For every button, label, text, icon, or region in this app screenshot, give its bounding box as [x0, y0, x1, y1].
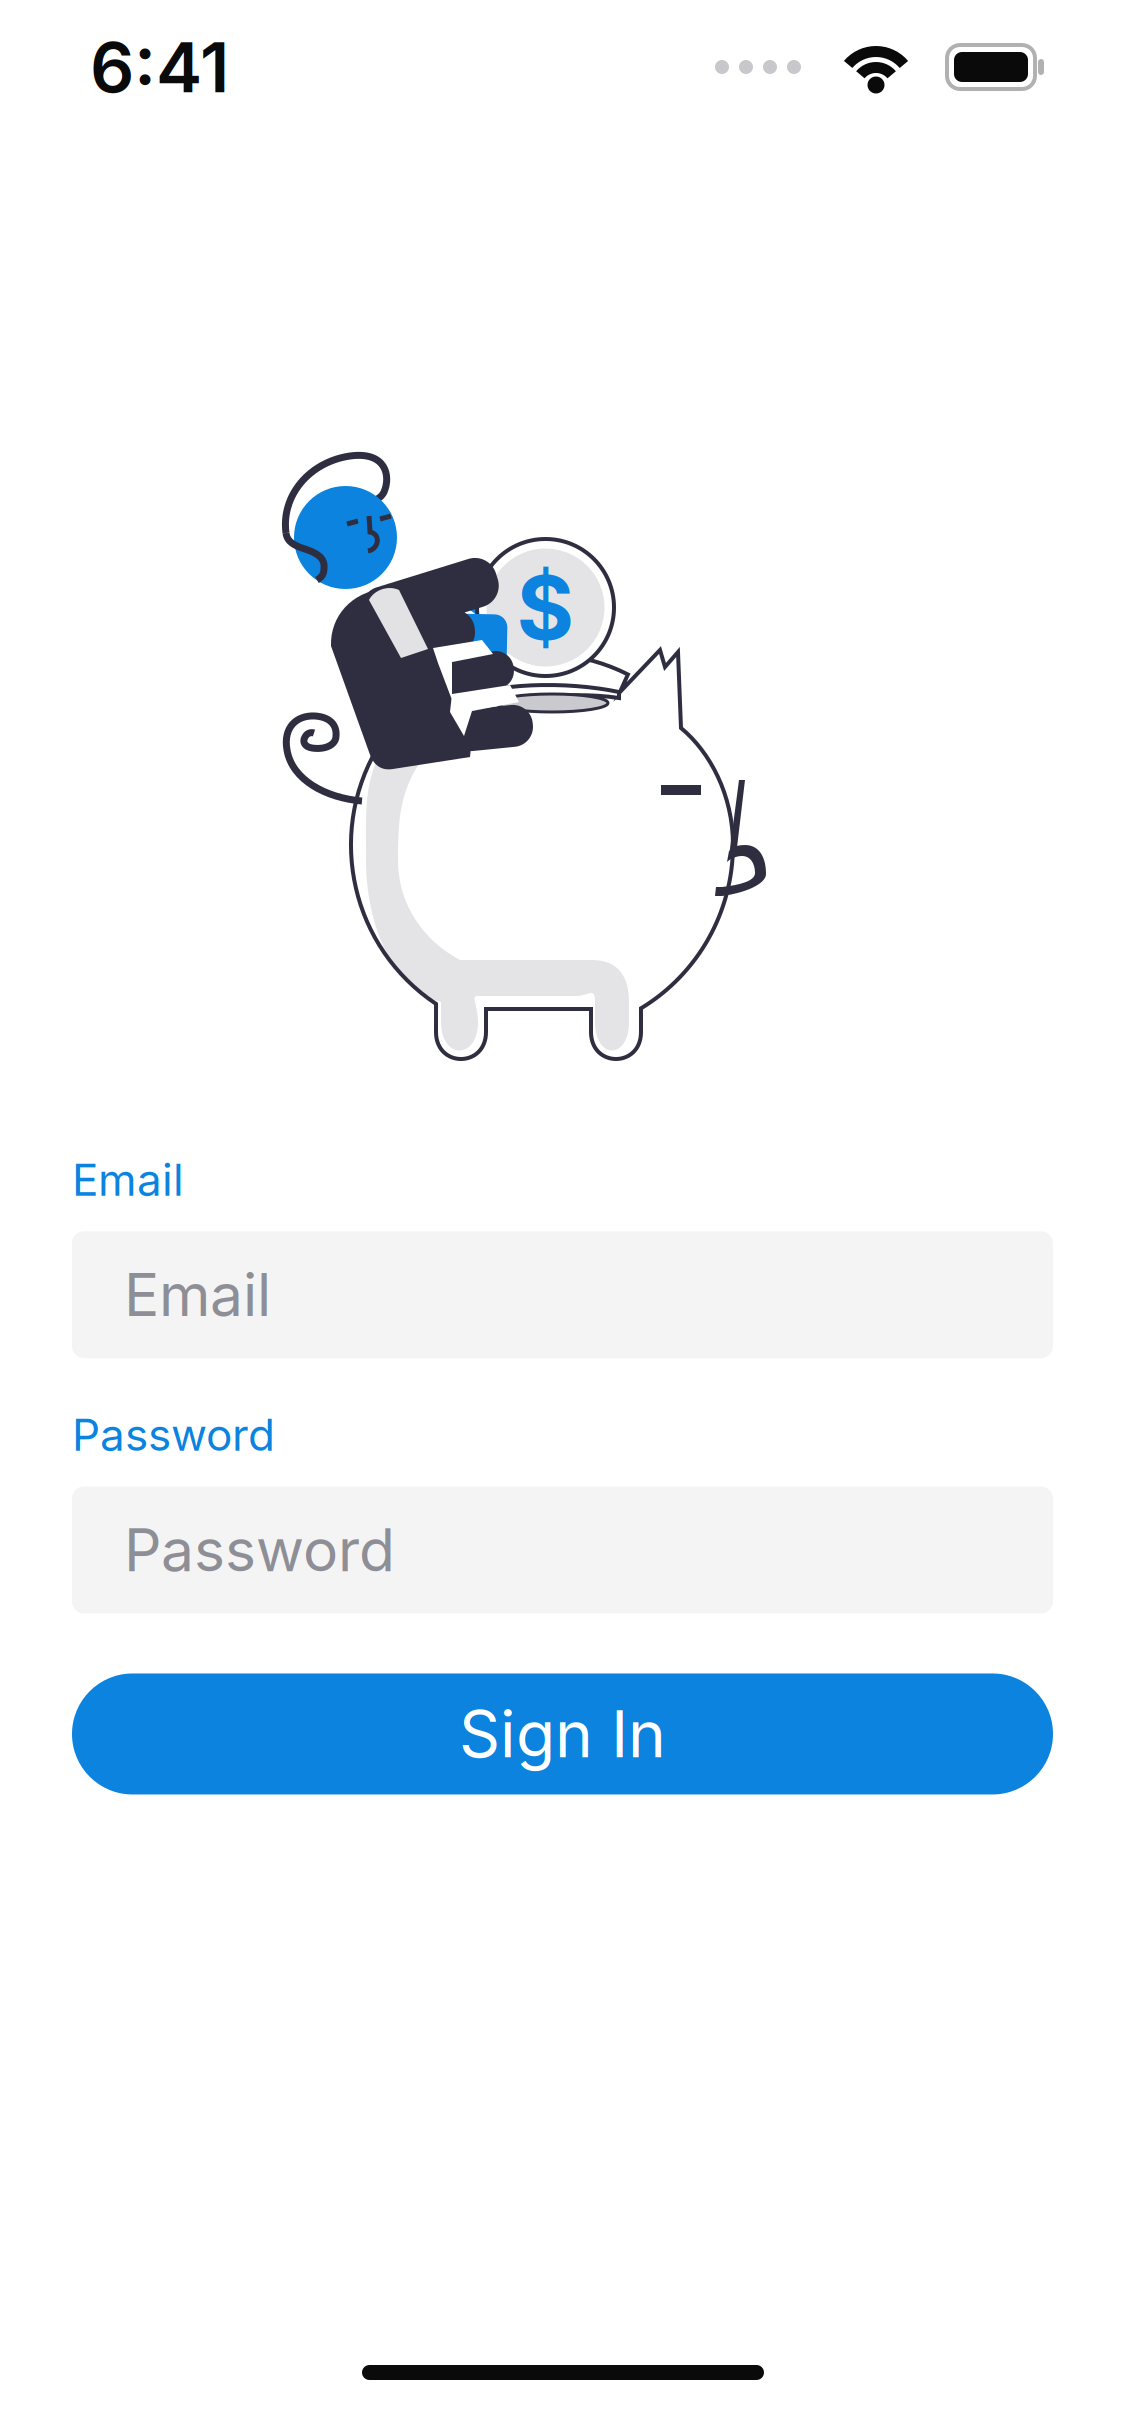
staticText: $ [516, 554, 574, 661]
staticText: Sign In [459, 1695, 666, 1773]
staticText: Email [124, 1259, 271, 1330]
staticText: 6:41 [90, 25, 229, 109]
staticText: Email [72, 1153, 184, 1206]
staticText: Password [124, 1514, 395, 1585]
button[interactable]: Sign In [72, 1673, 1053, 1794]
staticText: Password [72, 1408, 275, 1461]
